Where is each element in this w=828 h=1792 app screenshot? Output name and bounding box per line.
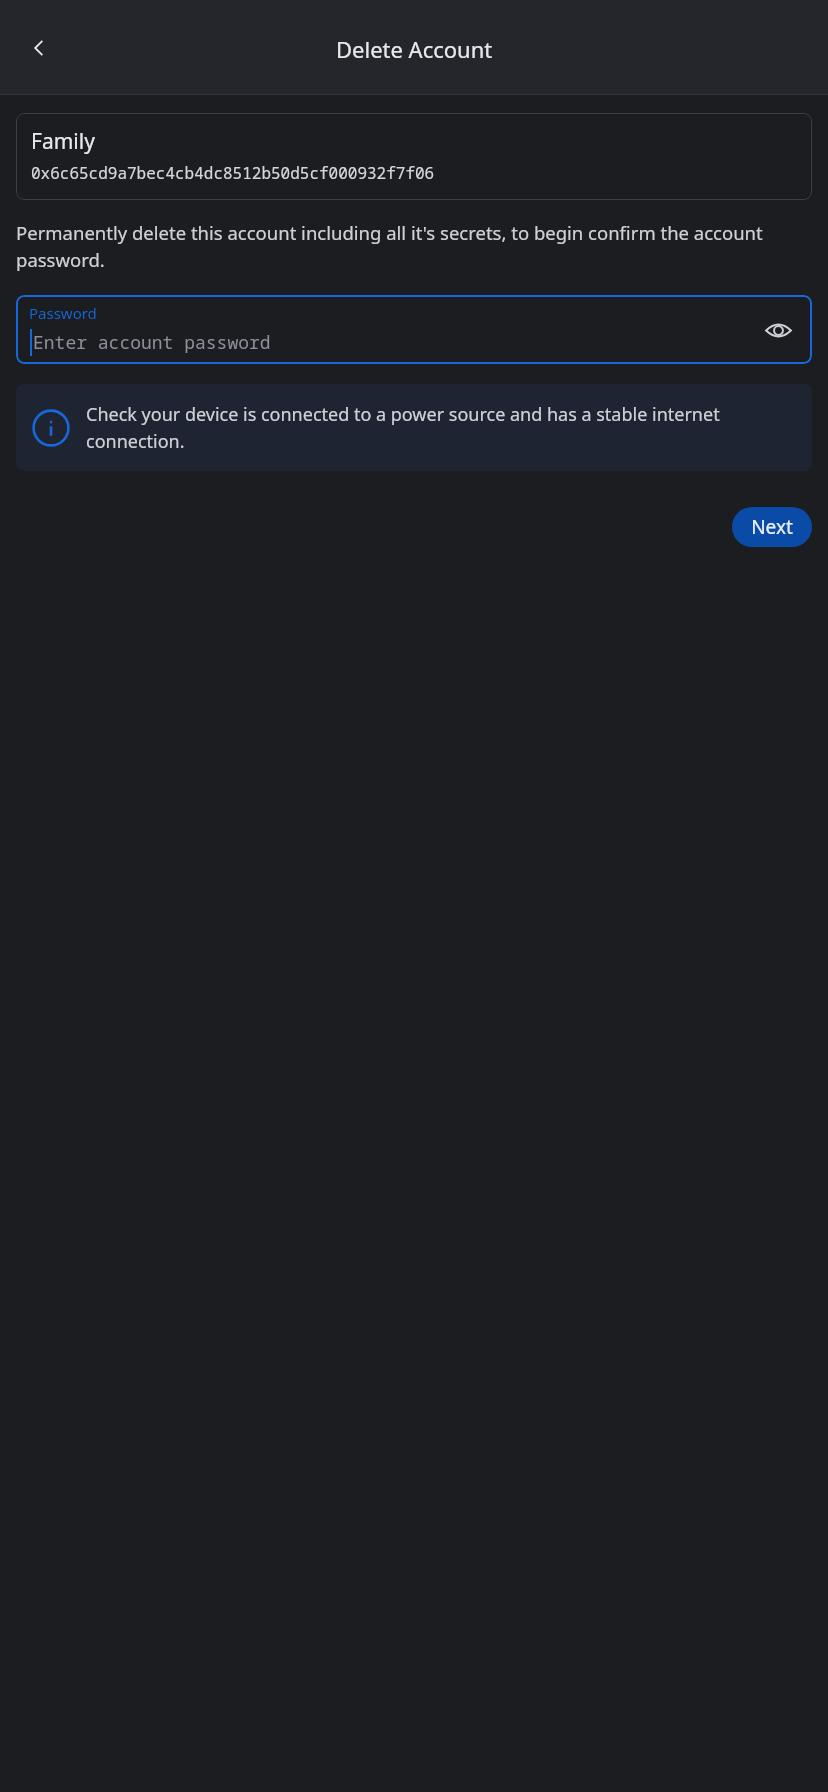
button[interactable]: Show password <box>754 306 802 354</box>
staticText: Password <box>29 303 97 323</box>
staticText: Delete Account <box>336 34 493 64</box>
button[interactable]: Back <box>15 24 63 72</box>
staticText: 0x6c65cd9a7bec4cb4dc8512b50d5cf000932f7f… <box>31 162 435 184</box>
staticText: Enter account password <box>33 330 271 355</box>
staticText: Family <box>31 127 95 156</box>
button[interactable]: Family <box>16 113 812 200</box>
staticText: Permanently delete this account includin… <box>16 220 812 273</box>
staticText: Next <box>751 514 793 540</box>
button[interactable]: Check your device is connected to a powe… <box>16 384 812 471</box>
staticText: Check your device is connected to a powe… <box>86 402 796 453</box>
button[interactable]: Next <box>732 507 812 547</box>
button[interactable]: Password <box>16 295 812 364</box>
